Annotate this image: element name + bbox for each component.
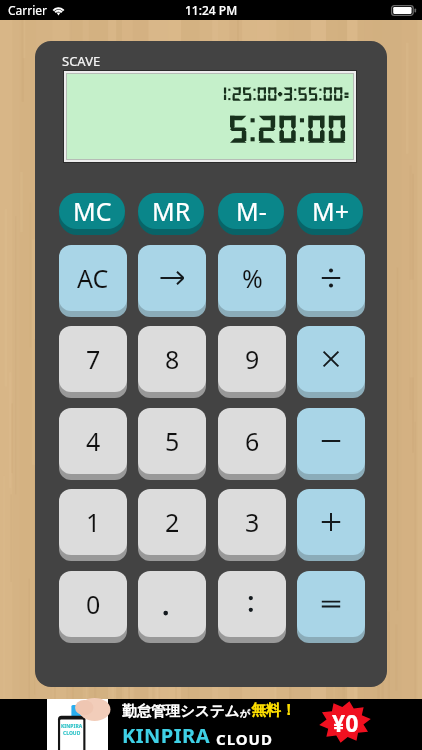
- button[interactable]: 3: [218, 489, 286, 555]
- staticText: 1: [86, 505, 101, 539]
- staticText: KINPIRA: [122, 722, 210, 749]
- staticText: MC: [73, 194, 112, 228]
- staticText: AC: [77, 261, 109, 295]
- button[interactable]: AC: [59, 245, 127, 311]
- staticText: が: [240, 707, 251, 720]
- staticText: ¥0: [332, 707, 359, 738]
- staticText: 2: [165, 505, 180, 539]
- staticText: KINPIRA: [61, 723, 83, 730]
- button[interactable]: 7: [59, 326, 127, 392]
- staticText: 9: [245, 342, 260, 376]
- button[interactable]: 6: [218, 408, 286, 474]
- staticText: MR: [152, 194, 191, 228]
- staticText: Carrier: [8, 2, 48, 18]
- staticText: 0: [86, 587, 101, 621]
- staticText: 無料！: [251, 701, 296, 720]
- button[interactable]: 8: [138, 326, 206, 392]
- staticText: 勤怠管理システム: [122, 702, 240, 720]
- staticText: 7: [86, 342, 101, 376]
- staticText: CLOUD: [63, 730, 81, 737]
- button[interactable]: 4: [59, 408, 127, 474]
- button[interactable]: Multiply: [297, 326, 365, 392]
- button[interactable]: MC: [59, 193, 125, 229]
- button[interactable]: 5: [138, 408, 206, 474]
- staticText: CLOUD: [216, 729, 273, 749]
- button[interactable]: 1: [59, 489, 127, 555]
- button[interactable]: Equals: [297, 571, 365, 637]
- staticText: 4: [86, 424, 101, 458]
- button[interactable]: Colon: [218, 571, 286, 637]
- button[interactable]: 9: [218, 326, 286, 392]
- staticText: 3: [245, 505, 260, 539]
- staticText: M-: [236, 194, 267, 228]
- button[interactable]: 2: [138, 489, 206, 555]
- staticText: 8: [165, 342, 180, 376]
- other: Battery full: [391, 5, 416, 16]
- button[interactable]: M-: [218, 193, 284, 229]
- staticText: 5: [165, 424, 180, 458]
- other: Wi-Fi: [51, 4, 66, 15]
- button[interactable]: Backspace: [138, 245, 206, 311]
- button[interactable]: M+: [297, 193, 363, 229]
- button[interactable]: KINPIRA: [0, 699, 422, 750]
- button[interactable]: Plus: [297, 489, 365, 555]
- staticText: %: [242, 261, 263, 295]
- staticText: 6: [245, 424, 260, 458]
- button[interactable]: Decimal point: [138, 571, 206, 637]
- button[interactable]: Minus: [297, 408, 365, 474]
- button[interactable]: %: [218, 245, 286, 311]
- staticText: 11:24 PM: [185, 2, 238, 18]
- staticText: SCAVE: [62, 52, 101, 70]
- button[interactable]: MR: [138, 193, 204, 229]
- staticText: M+: [312, 194, 349, 228]
- button[interactable]: Divide: [297, 245, 365, 311]
- button[interactable]: 0: [59, 571, 127, 637]
